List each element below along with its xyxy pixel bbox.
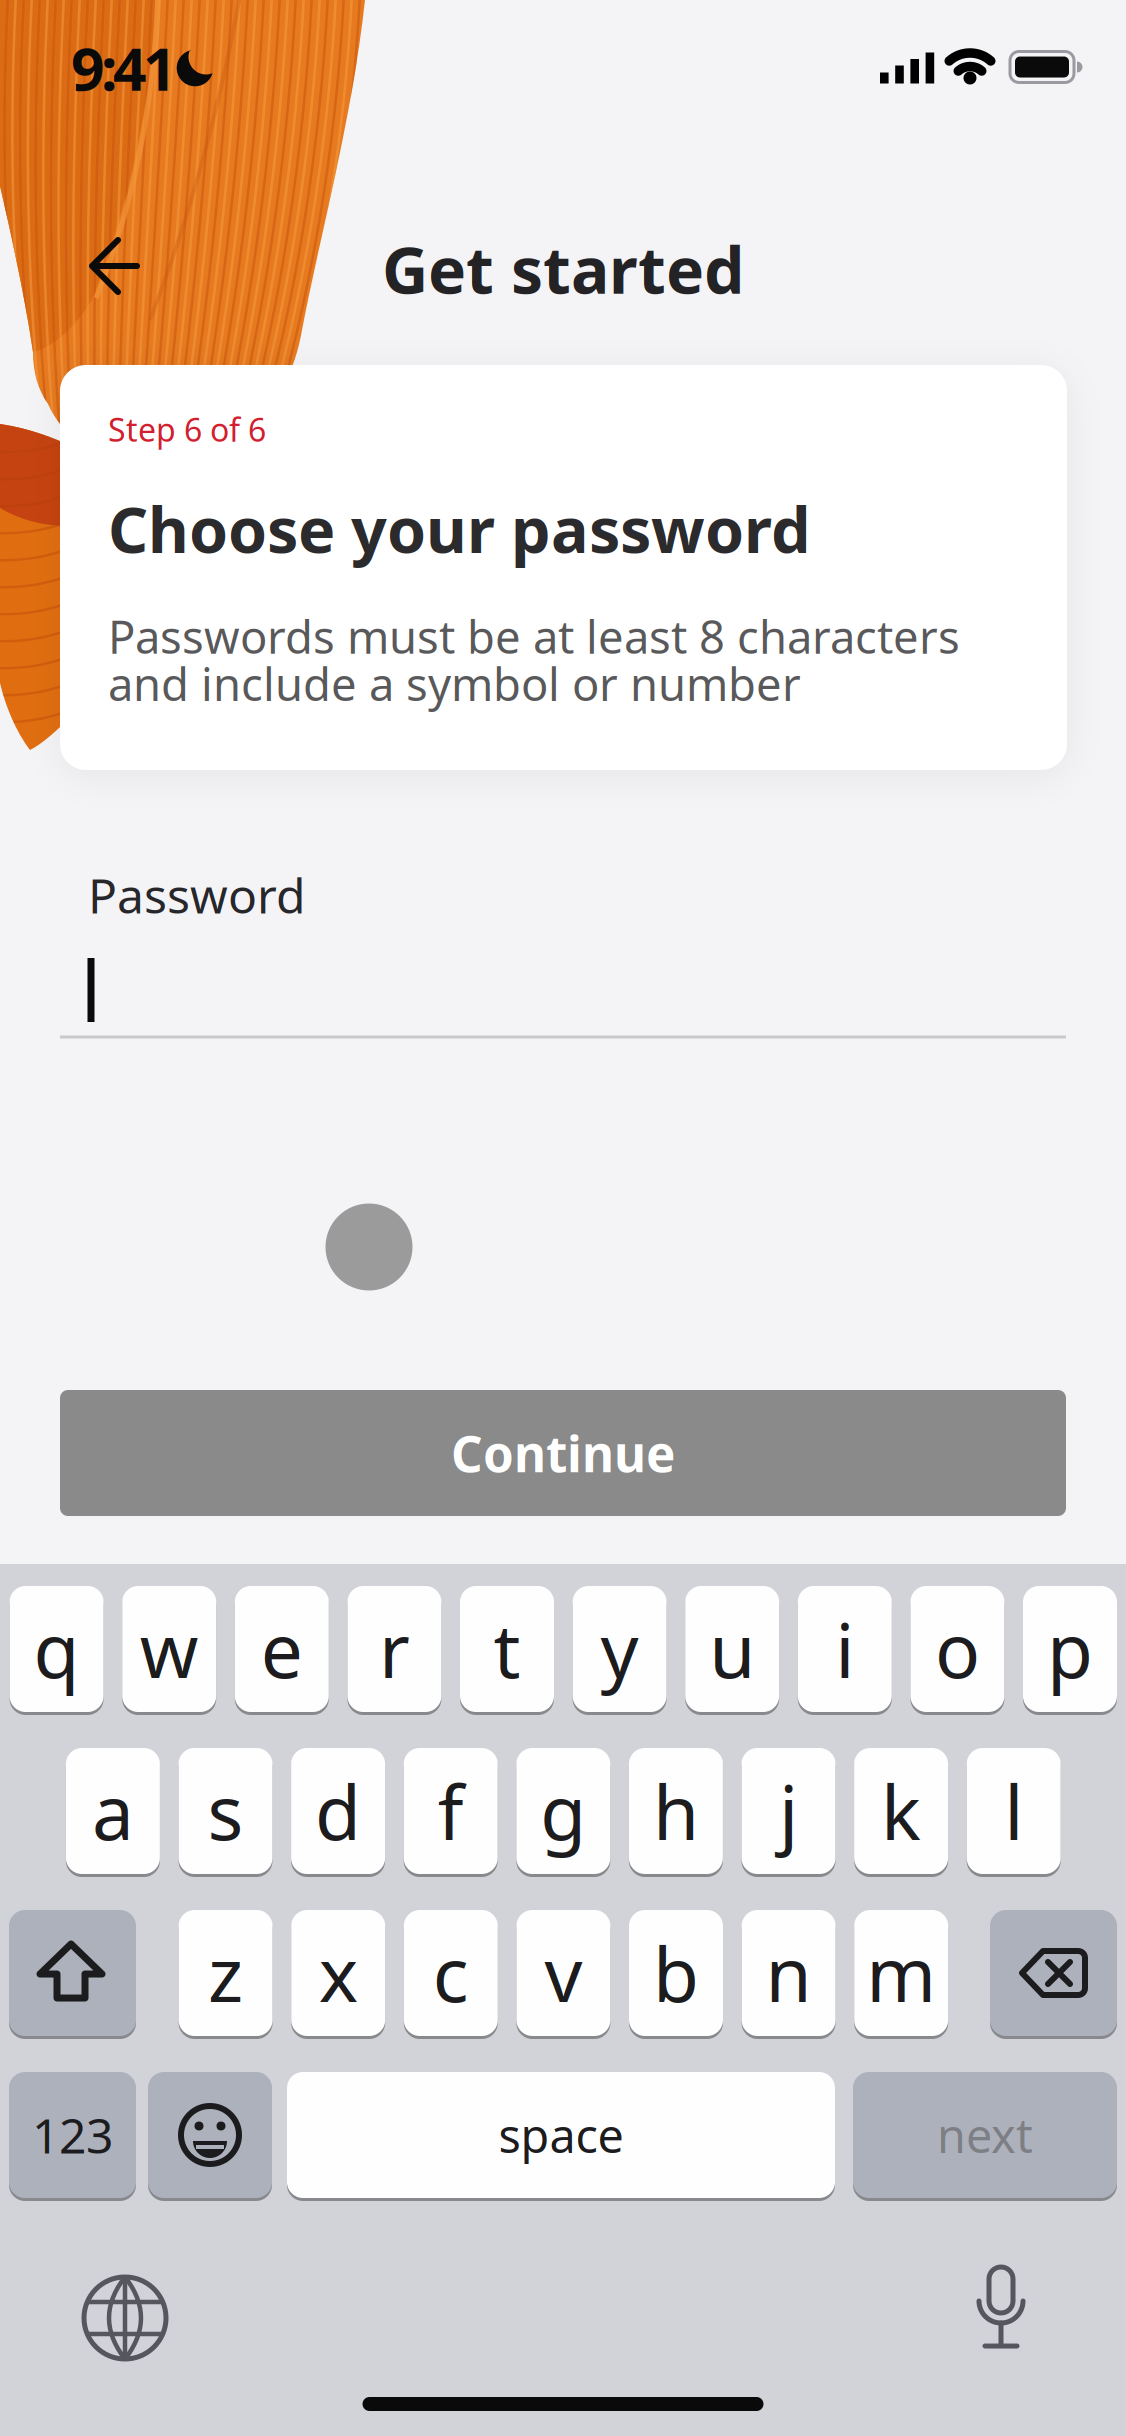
button[interactable]: r [347,1586,441,1712]
staticText: w [140,1599,199,1699]
staticText: Get started [382,226,744,311]
staticText: Passwords must be at least 8 characters [108,606,960,666]
button[interactable]: l [967,1748,1061,1874]
staticText: 9:41 [71,29,177,107]
staticText: g [540,1761,586,1861]
button[interactable]: c [404,1910,498,2036]
button[interactable]: Shift [9,1910,136,2036]
button[interactable]: Next keyboard [70,2263,180,2373]
staticText: 123 [32,2103,113,2167]
staticText: y [601,1599,639,1699]
button[interactable]: u [685,1586,779,1712]
button[interactable]: q [10,1586,104,1712]
button[interactable]: space [287,2072,835,2198]
button[interactable]: d [291,1748,385,1874]
button[interactable]: g [516,1748,610,1874]
button[interactable]: Emoji [148,2072,272,2198]
staticText: t [493,1599,520,1699]
staticText: v [544,1923,582,2023]
button[interactable]: Back [64,216,164,316]
button[interactable]: b [629,1910,723,2036]
button[interactable]: next [853,2072,1117,2198]
button[interactable]: f [404,1748,498,1874]
button[interactable]: p [1023,1586,1117,1712]
button[interactable]: v [516,1910,610,2036]
staticText: i [835,1599,854,1699]
button[interactable]: k [854,1748,948,1874]
button[interactable]: s [178,1748,272,1874]
button[interactable]: j [741,1748,835,1874]
staticText: next [937,2104,1033,2166]
staticText: b [653,1923,699,2023]
staticText: d [315,1761,361,1861]
staticText: e [261,1599,303,1699]
button[interactable]: o [910,1586,1004,1712]
staticText: Step 6 of 6 [108,408,266,450]
button[interactable]: Delete [990,1910,1117,2036]
staticText: q [34,1599,80,1699]
staticText: c [433,1923,469,2023]
staticText: k [881,1761,921,1861]
staticText: s [207,1761,243,1861]
staticText: z [208,1923,243,2023]
staticText: u [709,1599,755,1699]
staticText: r [379,1599,410,1699]
staticText: l [1004,1761,1023,1861]
button[interactable]: n [742,1910,836,2036]
button[interactable]: 123 [9,2072,136,2198]
button[interactable]: y [573,1586,667,1712]
staticText: j [779,1761,798,1861]
button[interactable]: x [291,1910,385,2036]
staticText: space [498,2104,623,2166]
staticText: h [653,1761,699,1861]
button[interactable]: e [235,1586,329,1712]
staticText: a [92,1761,134,1861]
button[interactable]: z [179,1910,273,2036]
button[interactable]: t [460,1586,554,1712]
button[interactable]: m [854,1910,948,2036]
button[interactable]: i [798,1586,892,1712]
staticText: Password [88,863,306,927]
staticText: Choose your password [108,487,811,570]
staticText: Continue [451,1420,675,1486]
button[interactable]: h [629,1748,723,1874]
staticText: f [438,1761,464,1861]
staticText: p [1047,1599,1093,1699]
button[interactable]: Dictate [946,2259,1056,2369]
staticText: n [766,1923,812,2023]
button[interactable]: a [66,1748,160,1874]
staticText: x [319,1923,358,2023]
button[interactable]: Continue [60,1390,1066,1516]
button[interactable]: w [122,1586,216,1712]
staticText: o [935,1599,980,1699]
staticText: and include a symbol or number [108,653,801,713]
staticText: m [866,1923,936,2023]
